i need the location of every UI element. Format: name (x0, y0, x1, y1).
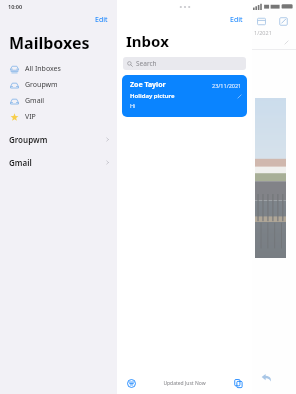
staticText: Hi (130, 102, 136, 109)
button[interactable]: Edit (86, 13, 117, 27)
staticText: Gmail (9, 157, 105, 168)
staticText: 10:00 (8, 3, 23, 10)
staticText: Holiday picture (130, 92, 237, 100)
button[interactable]: Reply (258, 369, 274, 385)
staticText: Updated Just Now (138, 380, 231, 387)
staticText: Zoe Taylor (130, 80, 212, 90)
button[interactable]: Search (123, 57, 246, 70)
staticText: VIP (25, 112, 36, 122)
staticText: Groupwm (9, 134, 105, 145)
staticText: Mailboxes (9, 32, 90, 54)
button[interactable]: VIP (0, 109, 117, 125)
button[interactable]: Compose (231, 376, 245, 390)
button[interactable]: Edit (221, 13, 252, 27)
button[interactable]: Groupwm (0, 77, 117, 93)
staticText: Edit (230, 15, 243, 25)
staticText: 1/2021 (254, 29, 272, 36)
staticText: 23/11/2021 (212, 82, 242, 89)
staticText: All Inboxes (25, 64, 61, 74)
button[interactable]: Archive (255, 15, 267, 27)
button[interactable]: Groupwm (0, 131, 117, 148)
button[interactable]: Gmail (0, 93, 117, 109)
button[interactable]: All Inboxes (0, 61, 117, 77)
staticText: Edit (95, 15, 108, 25)
staticText: Inbox (126, 31, 169, 51)
button[interactable]: Zoe Taylor (122, 75, 247, 117)
staticText: Search (136, 59, 157, 68)
button[interactable]: Filter (124, 376, 138, 390)
button[interactable]: Gmail (0, 154, 117, 171)
staticText: Groupwm (25, 80, 58, 90)
staticText: Gmail (25, 96, 45, 106)
button[interactable]: New message (277, 15, 289, 27)
